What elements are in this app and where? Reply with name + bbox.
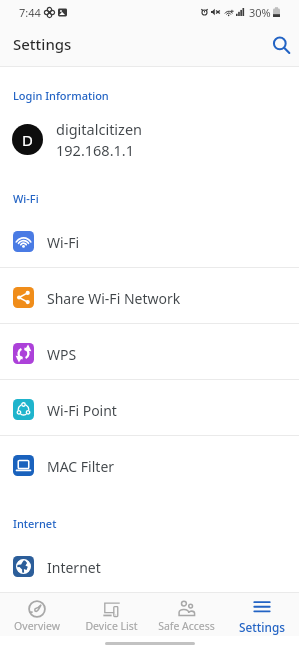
staticText: MAC Filter bbox=[47, 457, 115, 476]
staticText: Settings bbox=[239, 619, 285, 635]
staticText: Wi-Fi bbox=[47, 233, 80, 252]
staticText: Safe Access bbox=[158, 619, 215, 633]
button[interactable]: Share Wi-Fi Network bbox=[0, 268, 299, 323]
staticText: Device List bbox=[85, 619, 138, 633]
button[interactable]: Safe Access bbox=[149, 593, 224, 636]
staticText: digitalcitizen bbox=[56, 119, 143, 139]
button[interactable]: Search bbox=[266, 30, 294, 58]
staticText: D bbox=[22, 130, 33, 150]
button[interactable]: WPS bbox=[0, 324, 299, 379]
staticText: Internet bbox=[13, 516, 57, 531]
staticText: WPS bbox=[47, 345, 77, 364]
staticText: Settings bbox=[13, 34, 72, 54]
staticText: 192.168.1.1 bbox=[56, 140, 135, 160]
staticText: Share Wi-Fi Network bbox=[47, 289, 181, 308]
button[interactable]: Device List bbox=[74, 593, 149, 636]
staticText: Wi-Fi Point bbox=[47, 401, 117, 420]
button[interactable]: Overview bbox=[0, 593, 74, 636]
staticText: 7:44 bbox=[19, 5, 41, 20]
button[interactable]: Wi-Fi Point bbox=[0, 380, 299, 435]
staticText: 30% bbox=[249, 5, 271, 20]
button[interactable]: MAC Filter bbox=[0, 436, 299, 491]
staticText: Wi-Fi bbox=[13, 191, 39, 206]
staticText: Login Information bbox=[13, 88, 109, 103]
button[interactable]: Settings bbox=[224, 593, 299, 636]
button[interactable]: D bbox=[0, 108, 299, 170]
staticText: Internet bbox=[47, 558, 101, 577]
staticText: Overview bbox=[14, 619, 60, 633]
button[interactable]: Internet bbox=[0, 537, 299, 592]
button[interactable]: Wi-Fi bbox=[0, 212, 299, 267]
